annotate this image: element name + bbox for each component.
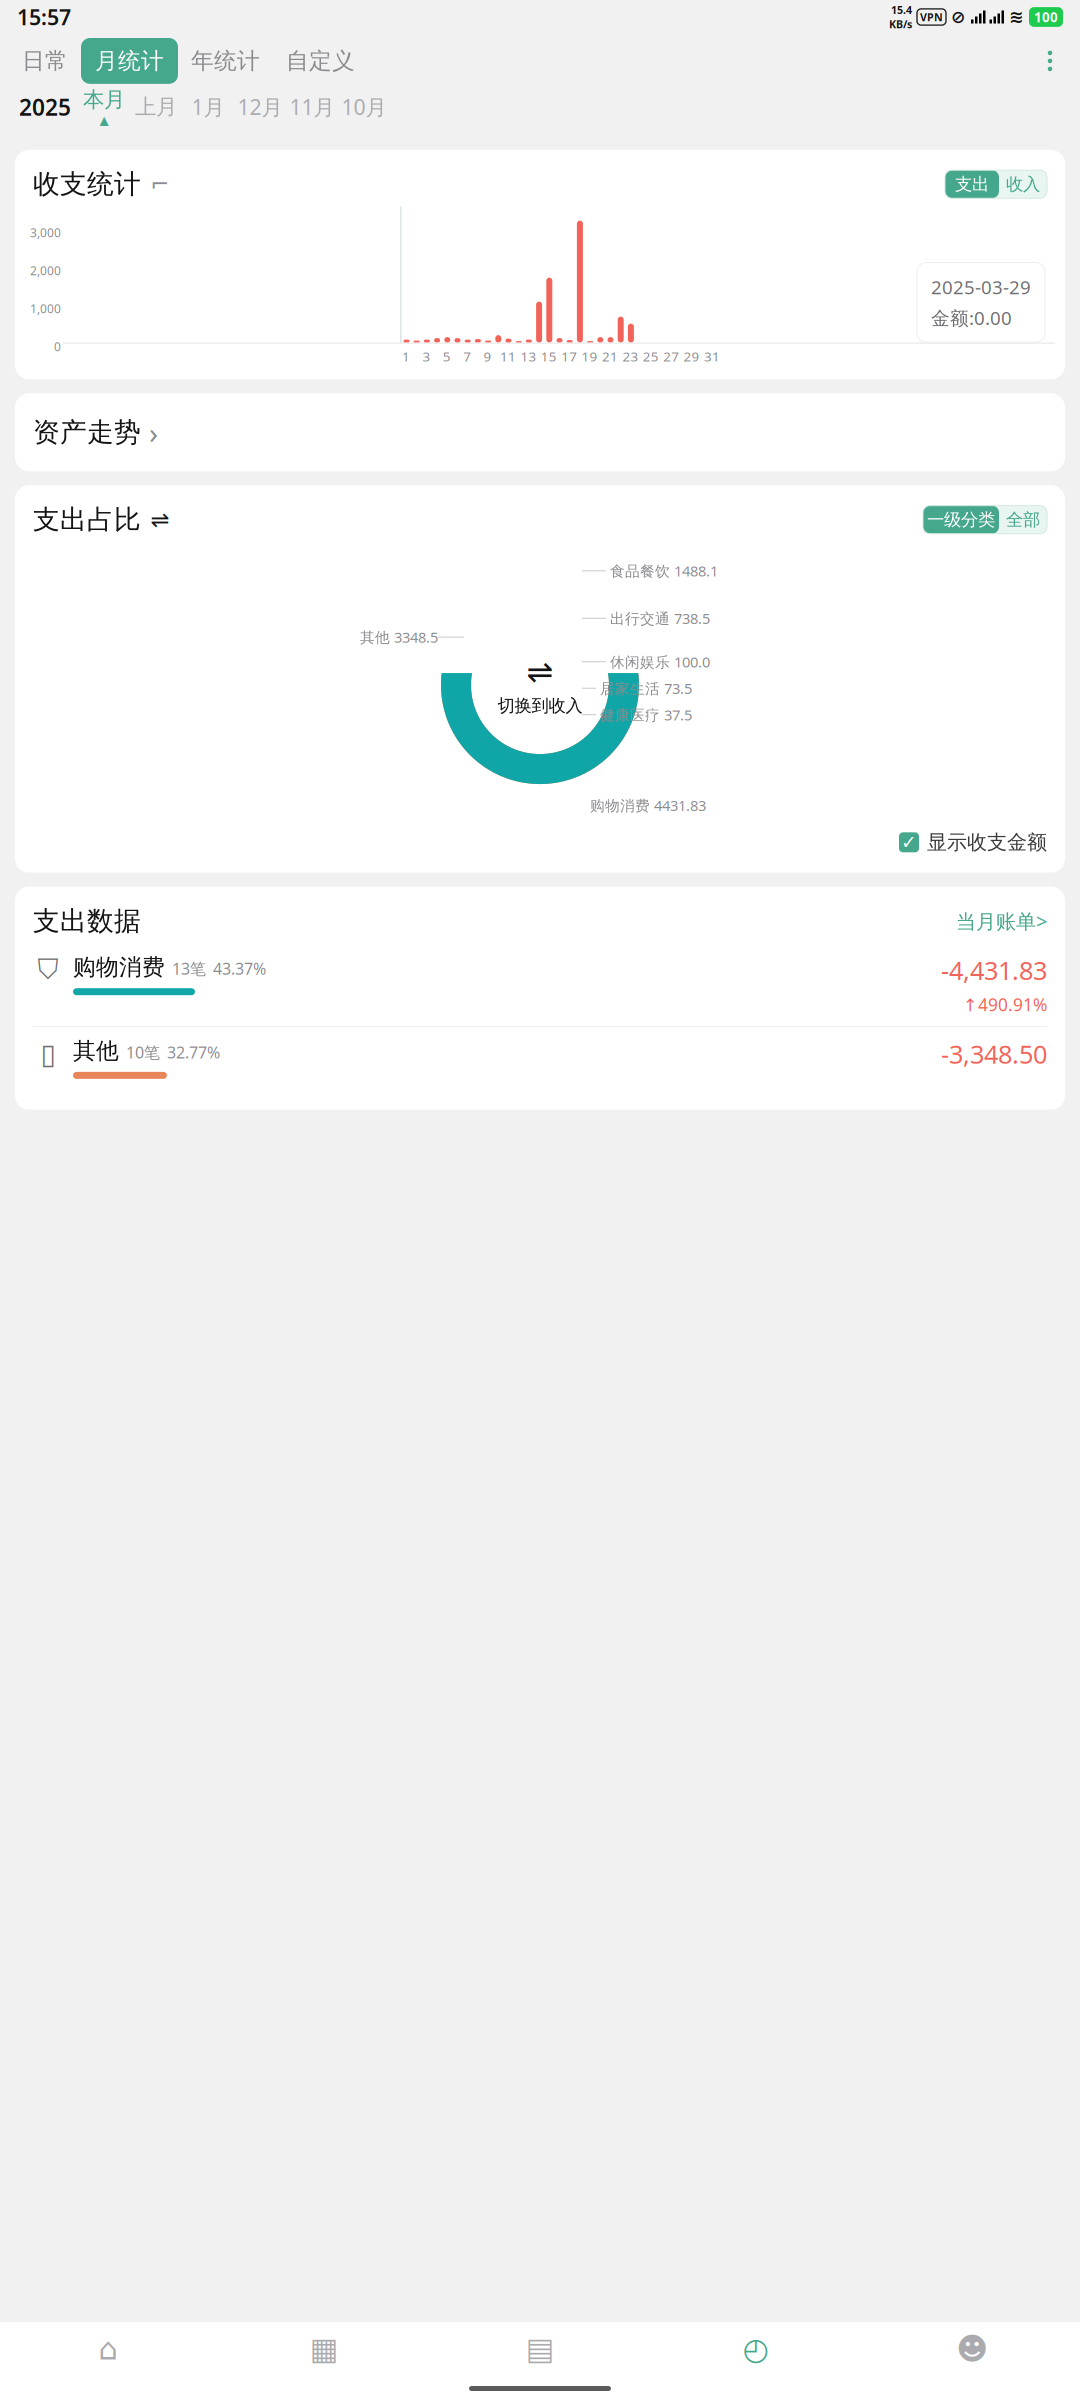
button[interactable]: 10月 <box>338 84 390 130</box>
staticText: 其他 3348.5 <box>360 627 438 647</box>
button[interactable]: 年统计 <box>178 38 273 84</box>
button[interactable]: Profile <box>864 2322 1080 2376</box>
staticText: 9 <box>484 348 492 365</box>
button[interactable]: Switch category level <box>149 509 171 531</box>
staticText: 年统计 <box>191 47 260 75</box>
staticText: 收支统计 <box>33 168 141 201</box>
staticText: 25 <box>643 348 659 365</box>
button[interactable]: Calendar <box>216 2322 432 2376</box>
button[interactable]: 支出 <box>945 170 999 198</box>
staticText: 29 <box>684 348 700 365</box>
button[interactable]: 月统计 <box>81 38 178 84</box>
staticText: 其他 <box>73 1037 119 1065</box>
staticText: 0 <box>54 339 61 354</box>
button[interactable]: 当月账单> <box>956 908 1047 934</box>
button[interactable]: More options <box>1029 40 1071 82</box>
button[interactable]: 11月 <box>286 84 338 130</box>
staticText: ☻ <box>956 2332 988 2366</box>
button[interactable]: ⛉ <box>33 943 1047 1026</box>
staticText: 当月账单> <box>956 908 1047 934</box>
staticText: 21 <box>602 348 618 365</box>
staticText: 1,000 <box>30 301 61 316</box>
button[interactable]: ✓ <box>899 830 1047 855</box>
button[interactable]: 自定义 <box>273 38 368 84</box>
button[interactable]: ⇌ <box>481 626 599 744</box>
staticText: 3 <box>422 348 430 365</box>
staticText: ↑490.91% <box>963 993 1047 1016</box>
staticText: 购物消费 <box>73 953 165 981</box>
staticText: -3,348.50 <box>941 1037 1047 1071</box>
staticText: 收入 <box>1006 174 1040 195</box>
staticText: 1 <box>402 348 410 365</box>
staticText: 支出 <box>955 174 989 195</box>
staticText: 10笔 <box>126 1042 160 1063</box>
staticText: 食品餐饮 1488.1 <box>610 561 718 581</box>
staticText: 17 <box>561 348 577 365</box>
staticText: 日常 <box>22 47 68 75</box>
button[interactable]: Wallet <box>432 2322 648 2376</box>
staticText: 居家生活 73.5 <box>600 678 692 698</box>
staticText: 5 <box>443 348 451 365</box>
staticText: 13笔 <box>172 958 206 979</box>
staticText: ⛉ <box>37 957 58 984</box>
staticText: 7 <box>463 348 471 365</box>
button[interactable]: 1月 <box>182 84 234 130</box>
staticText: 全部 <box>1006 509 1040 530</box>
button[interactable]: 资产走势 <box>15 393 1065 471</box>
staticText: ✓ <box>901 832 917 853</box>
staticText: 2,000 <box>30 263 61 278</box>
staticText: 43.37% <box>213 958 266 979</box>
staticText: -4,431.83 <box>941 953 1047 987</box>
staticText: 自定义 <box>286 47 355 75</box>
staticText: ⊘ <box>951 7 966 27</box>
button[interactable]: 全部 <box>999 506 1047 534</box>
button[interactable]: 上月 <box>130 84 182 130</box>
staticText: ≋ <box>1009 7 1024 27</box>
staticText: 11月 <box>289 93 334 121</box>
staticText: 31 <box>704 348 720 365</box>
button[interactable]: 日常 <box>9 38 81 84</box>
staticText: 一级分类 <box>927 509 995 530</box>
staticText: 32.77% <box>167 1042 220 1063</box>
staticText: 11 <box>500 348 516 365</box>
staticText: 支出占比 <box>33 503 141 536</box>
staticText: 27 <box>663 348 679 365</box>
button[interactable]: 收入 <box>999 170 1047 198</box>
staticText: 15 <box>541 348 557 365</box>
staticText: 休闲娱乐 100.0 <box>610 652 710 671</box>
staticText: 购物消费 4431.83 <box>590 796 706 815</box>
staticText: VPN <box>920 10 943 24</box>
button[interactable]: 12月 <box>234 84 286 130</box>
staticText: 10月 <box>341 93 386 121</box>
staticText: 100 <box>1034 8 1058 26</box>
staticText: KB/s <box>889 17 912 31</box>
staticText: 13 <box>520 348 536 365</box>
staticText: 资产走势 <box>33 416 141 449</box>
button[interactable]: Statistics <box>648 2322 864 2376</box>
staticText: ◴ <box>742 2332 769 2366</box>
staticText: 出行交通 738.5 <box>610 608 710 628</box>
staticText: 本月 <box>83 86 125 113</box>
staticText: ▲ <box>99 114 108 127</box>
staticText: ⇌ <box>526 654 553 690</box>
button[interactable]: Expand chart <box>149 173 171 195</box>
staticText: 15.4 <box>891 3 912 17</box>
button[interactable]: ▯ <box>33 1027 1047 1110</box>
staticText: ▤ <box>525 2332 554 2366</box>
button[interactable]: 本月 <box>78 84 130 130</box>
staticText: 12月 <box>237 93 282 121</box>
staticText: ⇌ <box>150 507 169 532</box>
staticText: 支出数据 <box>33 905 141 937</box>
staticText: 2025-03-29 <box>931 275 1031 299</box>
staticText: 月统计 <box>95 47 164 75</box>
staticText: › <box>149 413 158 452</box>
button[interactable]: Home <box>0 2322 216 2376</box>
staticText: 1月 <box>191 93 224 121</box>
staticText: 健康医疗 37.5 <box>600 705 692 724</box>
button[interactable]: 一级分类 <box>923 506 999 534</box>
staticText: 23 <box>622 348 638 365</box>
staticText: 2025 <box>19 92 71 122</box>
staticText: ⌂ <box>98 2332 117 2366</box>
staticText: ⌐ <box>150 171 169 197</box>
staticText: 切换到收入 <box>497 695 582 716</box>
